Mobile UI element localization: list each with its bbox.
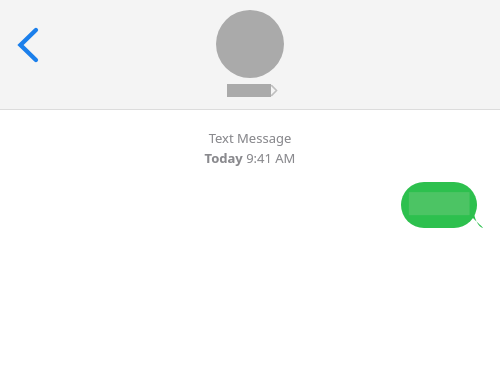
staticText: Text Message xyxy=(0,129,500,147)
button[interactable]: Sent message xyxy=(401,182,483,228)
button[interactable]: Back xyxy=(2,22,54,68)
staticText: Today 9:41 AM xyxy=(0,149,500,167)
button[interactable]: Contact info xyxy=(216,10,284,97)
